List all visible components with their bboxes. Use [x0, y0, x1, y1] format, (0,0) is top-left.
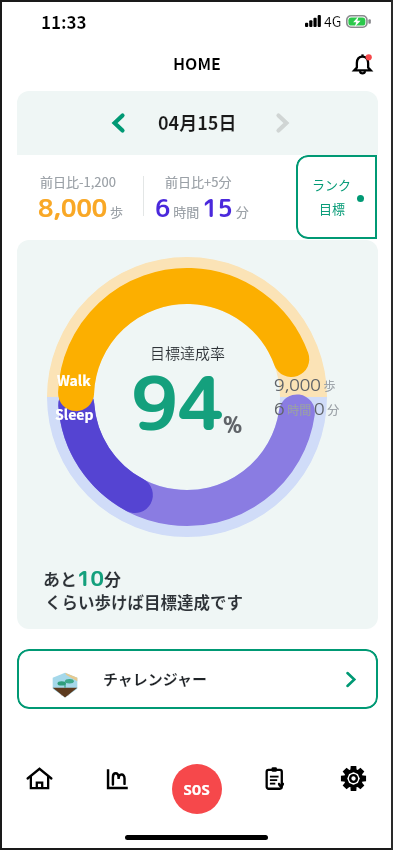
staticText: くらい歩けば目標達成です	[45, 590, 243, 614]
staticText: 4G	[324, 11, 342, 31]
staticText: チャレンジャー	[103, 668, 208, 690]
staticText: 8,000 歩	[38, 191, 124, 224]
staticText: 前日比+5分	[165, 172, 232, 191]
staticText: 目標	[319, 199, 346, 218]
button[interactable]: Records	[235, 756, 314, 800]
staticText: HOME	[173, 51, 221, 74]
staticText: Walk	[57, 370, 91, 390]
button[interactable]: Statistics	[78, 756, 156, 800]
button[interactable]: Settings	[314, 756, 393, 800]
staticText: Sleep	[55, 404, 94, 424]
button[interactable]: Notifications	[345, 47, 379, 81]
staticText: 6 時間 0 分	[274, 397, 340, 421]
staticText: 94	[131, 350, 226, 453]
staticText: %	[223, 409, 243, 440]
staticText: 9,000 歩	[274, 373, 336, 397]
staticText: 前日比-1,200	[40, 172, 116, 191]
staticText: 6 時間 15 分	[155, 191, 249, 224]
button[interactable]: ランク	[296, 155, 377, 239]
button[interactable]: Next day	[265, 106, 299, 140]
button[interactable]: チャレンジャー	[17, 649, 378, 709]
button[interactable]: Home	[0, 756, 78, 800]
button[interactable]: Previous day	[102, 106, 136, 140]
staticText: あと10分	[43, 563, 121, 592]
button[interactable]: SOS emergency	[172, 764, 222, 814]
staticText: SOS	[183, 779, 211, 799]
staticText: ランク	[312, 175, 352, 194]
staticText: 04月15日	[158, 109, 237, 135]
staticText: 11:33	[41, 9, 87, 34]
staticText: 目標達成率	[150, 342, 226, 364]
